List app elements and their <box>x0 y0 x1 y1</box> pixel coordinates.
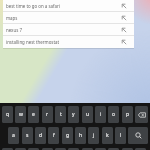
button[interactable]: f <box>48 127 59 144</box>
staticText: h <box>79 132 83 139</box>
button[interactable]: a <box>8 127 19 144</box>
button[interactable]: r <box>42 106 53 123</box>
staticText: j <box>93 132 95 139</box>
button[interactable] <box>122 148 133 150</box>
staticText: t <box>60 111 62 118</box>
button[interactable] <box>28 148 39 150</box>
staticText: best time to go on a safari <box>6 3 60 9</box>
staticText: e <box>32 111 35 118</box>
button[interactable] <box>15 148 26 150</box>
button[interactable]: maps <box>3 12 134 23</box>
button[interactable]: t <box>55 106 66 123</box>
staticText: i <box>100 111 102 118</box>
button[interactable] <box>95 148 106 150</box>
button[interactable]: s <box>22 127 33 144</box>
staticText: installing nest thermostat <box>6 39 60 45</box>
staticText: k <box>106 132 109 139</box>
staticText: s <box>26 132 29 139</box>
button[interactable]: j <box>88 127 99 144</box>
staticText: maps <box>6 15 18 21</box>
staticText: r <box>46 111 49 118</box>
button[interactable]: o <box>108 106 119 123</box>
button[interactable]: best time to go on a safari <box>3 0 134 11</box>
button[interactable] <box>68 148 79 150</box>
staticText: w <box>19 111 23 118</box>
button[interactable] <box>128 127 148 144</box>
staticText: u <box>86 111 90 118</box>
staticText: f <box>53 132 55 139</box>
button[interactable]: l <box>115 127 126 144</box>
staticText: g <box>66 132 70 139</box>
button[interactable]: y <box>68 106 79 123</box>
button[interactable] <box>55 148 66 150</box>
button[interactable] <box>135 148 146 150</box>
staticText: o <box>112 111 116 118</box>
staticText: a <box>12 132 15 139</box>
button[interactable]: k <box>102 127 113 144</box>
staticText: p <box>126 111 130 118</box>
button[interactable] <box>108 148 119 150</box>
button[interactable]: p <box>122 106 133 123</box>
button[interactable]: installing nest thermostat <box>3 36 134 47</box>
button[interactable] <box>82 148 93 150</box>
button[interactable]: w <box>15 106 26 123</box>
button[interactable]: u <box>82 106 93 123</box>
staticText: nexus 7 <box>6 27 22 33</box>
button[interactable]: d <box>35 127 46 144</box>
button[interactable]: i <box>95 106 106 123</box>
button[interactable] <box>42 148 53 150</box>
button[interactable] <box>135 106 148 123</box>
staticText: y <box>72 111 75 118</box>
button[interactable]: q <box>2 106 13 123</box>
button[interactable] <box>2 148 13 150</box>
button[interactable]: g <box>62 127 73 144</box>
button[interactable]: e <box>28 106 39 123</box>
staticText: q <box>6 111 10 118</box>
staticText: l <box>120 132 122 139</box>
staticText: d <box>39 132 43 139</box>
button[interactable]: nexus 7 <box>3 24 134 35</box>
button[interactable]: h <box>75 127 86 144</box>
